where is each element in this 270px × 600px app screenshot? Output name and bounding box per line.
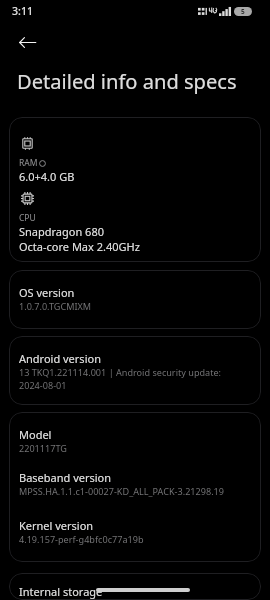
staticText: Baseband version — [19, 470, 112, 485]
staticText: 13 TKQ1.221114.001 | Android security up… — [19, 366, 222, 392]
staticText: RAM — [19, 157, 38, 169]
staticText: 4.19.157-perf-g4bfc0c77a19b — [19, 533, 144, 545]
button[interactable]: Back — [11, 26, 43, 58]
staticText: 2201117TG — [19, 442, 67, 454]
staticText: MPSS.HA.1.1.c1-00027-KD_ALL_PACK-3.21298… — [19, 485, 225, 497]
staticText: 5 — [241, 7, 245, 16]
staticText: Model — [19, 427, 52, 442]
button[interactable]: OS version — [9, 270, 261, 329]
staticText: Snapdragon 680 — [19, 224, 104, 239]
staticText: 3:11 — [12, 4, 34, 18]
staticText: Internal storage — [19, 584, 103, 599]
button[interactable]: Android version — [9, 336, 261, 405]
staticText: 1.0.7.0.TGCMIXM — [19, 300, 92, 312]
staticText: Detailed info and specs — [17, 68, 237, 95]
staticText: Octa-core Max 2.40GHz — [19, 239, 140, 254]
staticText: 6.0+4.0 GB — [19, 169, 75, 184]
staticText: OS version — [19, 285, 75, 300]
button[interactable]: RAM — [9, 117, 261, 262]
button[interactable]: Internal storage — [9, 573, 261, 600]
staticText: Android version — [19, 351, 101, 366]
staticText: Kernel version — [19, 518, 94, 533]
button[interactable]: Model — [9, 412, 261, 562]
staticText: CPU — [19, 212, 36, 224]
